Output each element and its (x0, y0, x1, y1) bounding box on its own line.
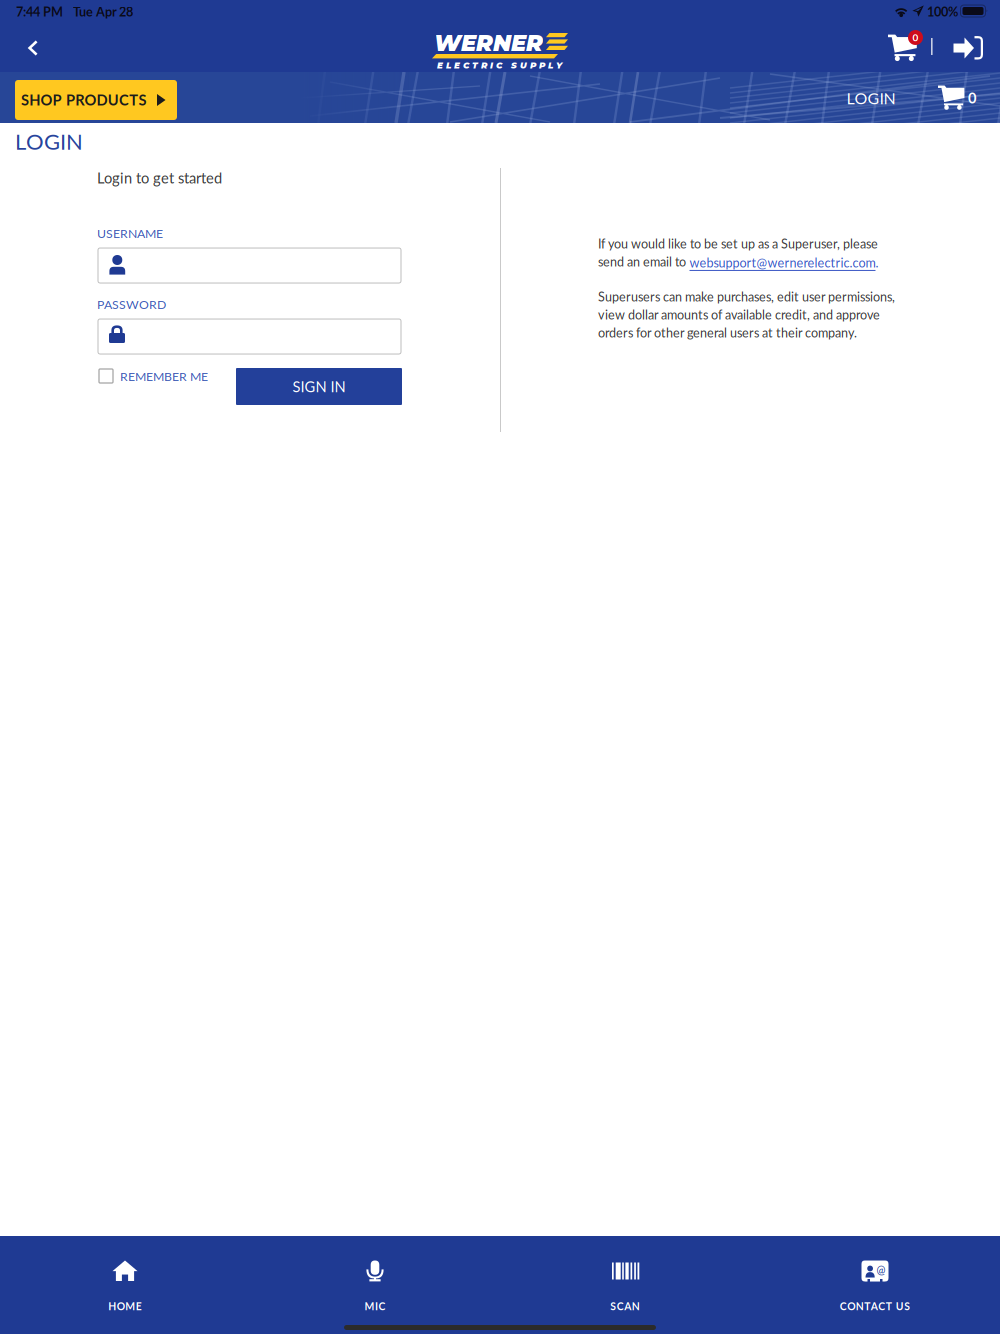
staticText: Tue Apr 28 (73, 4, 133, 19)
staticText: LOGIN (846, 88, 895, 108)
button[interactable]: MIC (250, 1236, 500, 1334)
staticText: SCAN (610, 1300, 640, 1312)
staticText: @ (876, 1263, 885, 1276)
button[interactable]: Back (11, 26, 55, 70)
button[interactable]: SHOP PRODUCTS (15, 80, 177, 120)
staticText: CONTACT US (840, 1300, 910, 1312)
button[interactable]: SCAN (500, 1236, 750, 1334)
staticText: 0 (968, 89, 977, 107)
staticText: WERNER (434, 29, 543, 57)
staticText: If you would like to be set up as a Supe… (598, 236, 878, 251)
staticText: Login to get started (97, 169, 222, 187)
staticText: PASSWORD (97, 297, 166, 312)
staticText: Superusers can make purchases, edit user… (598, 289, 895, 304)
staticText: SHOP PRODUCTS (21, 91, 146, 109)
staticText: 100% (927, 4, 958, 19)
staticText: view dollar amounts of available credit,… (598, 307, 880, 322)
button[interactable]: Cart (888, 30, 924, 64)
button[interactable]: SIGN IN (236, 368, 402, 405)
staticText: LOGIN (15, 128, 83, 154)
button[interactable]: Cart (938, 81, 988, 115)
button[interactable]: HOME (0, 1236, 250, 1334)
button[interactable]: LOGIN (838, 80, 904, 116)
button[interactable]: REMEMBER ME (99, 365, 217, 387)
button[interactable]: @ (750, 1236, 1000, 1334)
staticText: 7:44 PM (16, 4, 63, 19)
staticText: 0 (912, 31, 918, 43)
staticText: MIC (364, 1300, 385, 1312)
staticText: REMEMBER ME (120, 369, 208, 384)
staticText: ELECTRIC SUPPLY (437, 60, 562, 71)
button[interactable]: websupport@wernerelectric.com. (691, 254, 877, 271)
staticText: orders for other general users at their … (598, 325, 857, 340)
staticText: SIGN IN (292, 378, 345, 395)
button[interactable]: Sign in (946, 33, 982, 63)
staticText: websupport@wernerelectric.com. (689, 255, 878, 270)
staticText: send an email to (598, 254, 686, 269)
staticText: USERNAME (97, 226, 163, 241)
staticText: HOME (108, 1300, 142, 1312)
